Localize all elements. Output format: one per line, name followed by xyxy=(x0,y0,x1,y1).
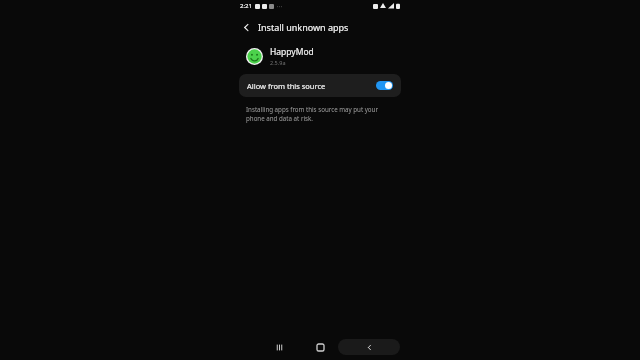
staticText: HappyMod xyxy=(270,46,314,58)
button[interactable]: Home xyxy=(311,338,329,356)
staticText: Allow from this source xyxy=(247,81,326,91)
button[interactable]: Back xyxy=(338,339,400,355)
staticText: Install unknown apps xyxy=(258,21,349,33)
button[interactable]: Back xyxy=(237,18,255,36)
staticText: 2.5.9a xyxy=(270,59,286,66)
staticText: Installing apps from this source may put… xyxy=(246,105,389,123)
staticText: 2:21 xyxy=(240,2,252,10)
button[interactable]: Allow from this source xyxy=(239,74,401,97)
button[interactable]: Recent apps xyxy=(270,338,288,356)
